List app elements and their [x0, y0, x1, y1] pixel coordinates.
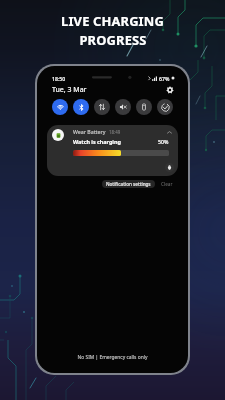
- button[interactable]: Do not disturb: [157, 99, 173, 115]
- staticText: 67%: [159, 75, 170, 82]
- staticText: LIVE CHARGING: [61, 12, 164, 30]
- staticText: Notification settings: [106, 181, 151, 187]
- button[interactable]: Flashlight: [136, 99, 152, 115]
- button[interactable]: Wear Battery: [47, 125, 178, 176]
- button[interactable]: Clear: [159, 179, 175, 189]
- button[interactable]: Mobile data: [94, 99, 110, 115]
- staticText: Watch is charging: [73, 138, 121, 145]
- staticText: Wear Battery: [73, 128, 106, 135]
- button[interactable]: Bluetooth: [73, 99, 89, 115]
- button[interactable]: Notification settings: [102, 180, 155, 188]
- button[interactable]: Settings: [165, 85, 174, 94]
- staticText: Tue, 3 Mar: [52, 85, 87, 95]
- staticText: 18:49: [109, 129, 121, 135]
- button[interactable]: Mute: [115, 99, 131, 115]
- staticText: Clear: [161, 181, 173, 187]
- staticText: 18:50: [52, 75, 66, 82]
- button[interactable]: Wi‑Fi: [52, 99, 68, 115]
- staticText: No SIM | Emergency calls only: [37, 354, 188, 361]
- button[interactable]: Open watch app: [165, 163, 174, 172]
- staticText: PROGRESS: [79, 31, 147, 49]
- staticText: 50%: [158, 138, 169, 145]
